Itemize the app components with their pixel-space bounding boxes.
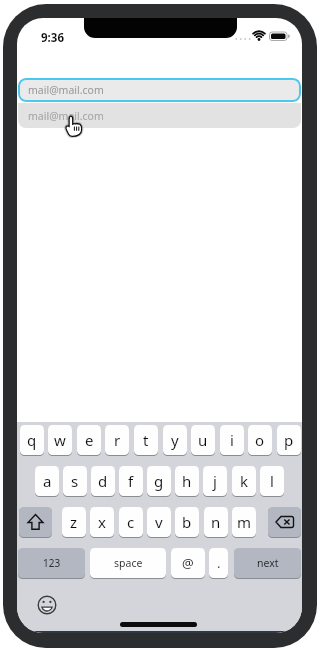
staticText: 123 (43, 556, 61, 570)
staticText: z (70, 512, 78, 532)
staticText: e (85, 430, 94, 450)
button[interactable]: w (48, 425, 72, 455)
button[interactable] (268, 507, 301, 537)
staticText: . (217, 554, 221, 572)
staticText: k (240, 471, 249, 491)
staticText: 9:36 (41, 30, 64, 46)
button[interactable]: f (119, 466, 143, 496)
button[interactable]: u (191, 425, 215, 455)
staticText: n (211, 512, 221, 532)
button[interactable]: @ (171, 548, 205, 578)
staticText: y (171, 430, 179, 450)
staticText: t (143, 430, 149, 450)
staticText: h (182, 471, 192, 491)
button[interactable] (37, 595, 57, 615)
button[interactable]: l (260, 466, 284, 496)
button[interactable]: z (62, 507, 86, 537)
staticText: g (154, 471, 164, 491)
button[interactable]: t (134, 425, 158, 455)
button[interactable] (19, 507, 52, 537)
button[interactable]: q (20, 425, 44, 455)
button[interactable]: m (232, 507, 256, 537)
button[interactable]: . (209, 548, 228, 578)
staticText: i (230, 430, 234, 450)
staticText: p (284, 430, 294, 450)
button[interactable]: o (248, 425, 272, 455)
button[interactable]: x (90, 507, 114, 537)
staticText: mail@mail.com (28, 83, 104, 97)
button[interactable]: v (147, 507, 171, 537)
button[interactable]: r (105, 425, 129, 455)
button[interactable]: h (175, 466, 199, 496)
staticText: j (213, 471, 217, 491)
staticText: w (54, 430, 66, 450)
staticText: @ (182, 554, 194, 572)
button[interactable]: n (204, 507, 228, 537)
button[interactable]: i (220, 425, 244, 455)
staticText: o (255, 430, 265, 450)
staticText: space (114, 556, 143, 570)
button[interactable]: 123 (18, 548, 85, 578)
button[interactable]: e (77, 425, 101, 455)
staticText: a (43, 471, 52, 491)
staticText: f (128, 471, 134, 491)
staticText: x (98, 512, 106, 532)
button[interactable]: d (91, 466, 115, 496)
staticText: r (114, 430, 121, 450)
button[interactable]: mail@mail.com (18, 103, 301, 128)
button[interactable]: next (234, 548, 301, 578)
staticText: m (237, 512, 252, 532)
button[interactable]: c (119, 507, 143, 537)
staticText: v (155, 512, 163, 532)
staticText: u (198, 430, 208, 450)
staticText: next (257, 556, 279, 570)
button[interactable]: s (63, 466, 87, 496)
button[interactable]: p (277, 425, 301, 455)
button[interactable]: y (163, 425, 187, 455)
staticText: q (27, 430, 37, 450)
staticText: s (71, 471, 79, 491)
staticText: l (270, 471, 274, 491)
button[interactable]: mail@mail.com (18, 78, 301, 102)
button[interactable]: b (175, 507, 199, 537)
button[interactable]: g (147, 466, 171, 496)
button[interactable]: j (203, 466, 227, 496)
staticText: d (98, 471, 108, 491)
staticText: c (127, 512, 135, 532)
button[interactable]: k (232, 466, 256, 496)
staticText: b (182, 512, 192, 532)
staticText: mail@mail.com (28, 109, 104, 123)
button[interactable]: a (35, 466, 59, 496)
button[interactable]: space (90, 548, 166, 578)
